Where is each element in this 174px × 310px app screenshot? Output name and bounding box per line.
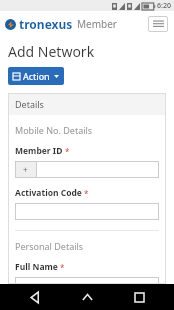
button[interactable] (15, 277, 159, 284)
staticText: * (84, 188, 89, 199)
button[interactable]: Recent apps (122, 284, 156, 310)
staticText: Member ID (15, 145, 63, 157)
staticText: Activation Code (15, 187, 82, 199)
staticText: Full Name (15, 261, 58, 273)
staticText: * (65, 146, 70, 157)
button[interactable]: Back (18, 284, 52, 310)
button[interactable]: Home (70, 284, 104, 310)
staticText: Add Network (8, 42, 95, 61)
button[interactable] (15, 203, 159, 220)
staticText: + (23, 164, 28, 175)
staticText: Member (77, 17, 117, 31)
staticText: Personal Details (15, 240, 84, 252)
staticText: tronexus (19, 16, 73, 32)
staticText: 6:20 (157, 1, 171, 11)
staticText: Details (15, 98, 44, 110)
staticText: Mobile No. Details (15, 124, 93, 136)
button[interactable]: Menu (148, 16, 168, 32)
button[interactable]: Action (8, 67, 64, 85)
staticText: * (60, 262, 65, 273)
staticText: Action (23, 70, 50, 82)
button[interactable]: + (15, 161, 159, 178)
